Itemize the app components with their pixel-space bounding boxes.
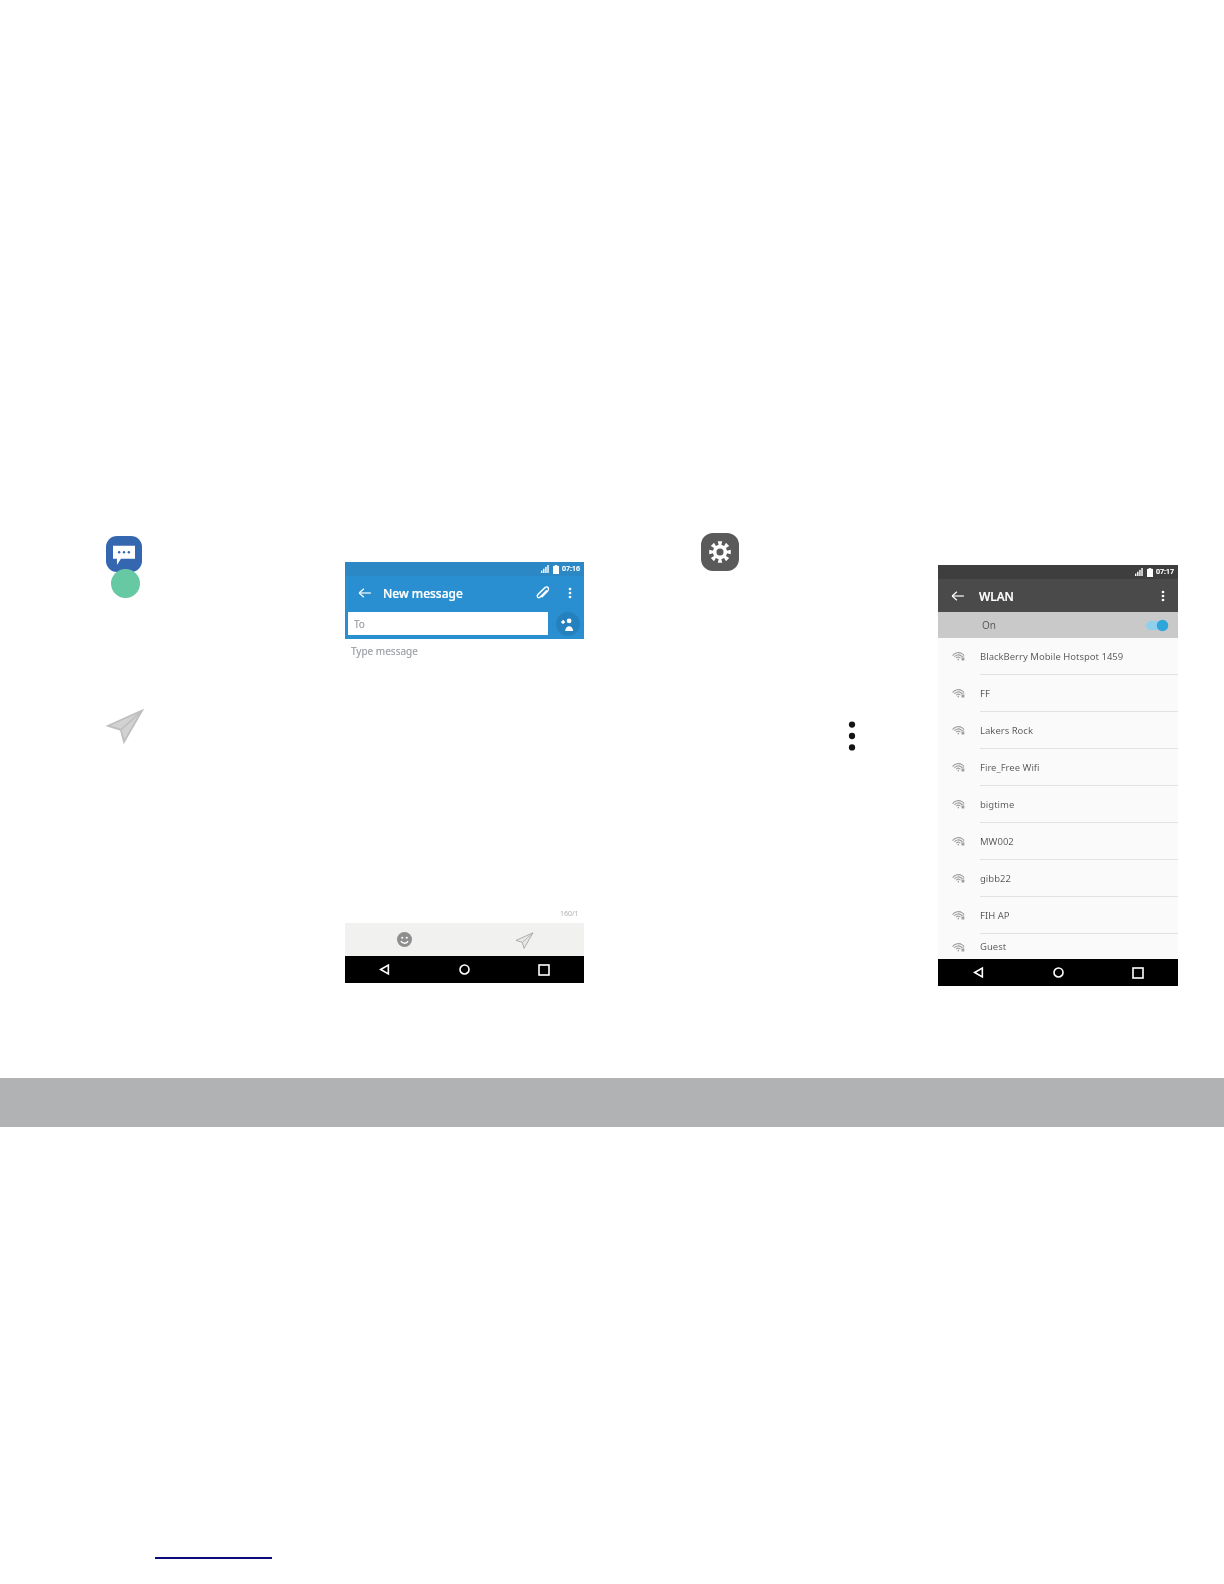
button[interactable]: Recents [504, 956, 584, 983]
staticText: To [354, 617, 365, 631]
button[interactable]: Contact [111, 569, 140, 598]
button[interactable]: Home [424, 956, 504, 983]
button[interactable]: bigtime [938, 786, 1178, 822]
button[interactable]: To [348, 612, 548, 635]
staticText: Lakers Rock [980, 724, 1170, 737]
button[interactable]: Settings [701, 533, 739, 571]
button[interactable]: Back [938, 579, 1178, 612]
staticText: Fire_Free Wifi [980, 761, 1170, 774]
button[interactable]: gibb22 [938, 860, 1178, 896]
staticText: Guest [980, 940, 1170, 953]
staticText: New message [383, 585, 463, 601]
button[interactable]: MW002 [938, 823, 1178, 859]
button[interactable]: Attach [533, 583, 553, 603]
button[interactable]: Home [1018, 959, 1098, 986]
staticText: MW002 [980, 835, 1170, 848]
staticText: 07:17 [1156, 567, 1174, 577]
button[interactable]: FIH AP [938, 897, 1178, 933]
staticText: FF [980, 687, 1170, 700]
button[interactable]: Back [345, 956, 424, 983]
staticText: BlackBerry Mobile Hotspot 1459 [980, 650, 1170, 663]
staticText: 160/1 [560, 909, 579, 919]
button[interactable]: Send [464, 923, 584, 956]
button[interactable]: Lakers Rock [938, 712, 1178, 748]
staticText: FIH AP [980, 909, 1170, 922]
button[interactable]: Back [355, 583, 375, 603]
button[interactable]: More options [562, 585, 578, 601]
staticText: WLAN [979, 588, 1014, 604]
button[interactable]: Emoji [345, 923, 464, 956]
staticText: On [982, 618, 996, 632]
button[interactable]: Guest [938, 934, 1178, 959]
staticText: bigtime [980, 798, 1170, 811]
button[interactable]: Send [104, 705, 144, 745]
button[interactable]: On [938, 612, 1178, 638]
button[interactable]: More options [843, 717, 861, 755]
button[interactable]: FF [938, 675, 1178, 711]
button[interactable]: More options [1155, 588, 1171, 604]
button[interactable]: Back [938, 959, 1018, 986]
staticText: 07:16 [562, 564, 580, 574]
button[interactable]: Back [948, 586, 968, 606]
button[interactable]: Add recipient [556, 612, 580, 636]
button[interactable]: Back [345, 576, 584, 609]
staticText: gibb22 [980, 872, 1170, 885]
button[interactable]: Messaging [106, 536, 142, 572]
button[interactable]: Type message [345, 639, 584, 923]
staticText: Type message [351, 644, 418, 658]
button[interactable]: Recents [1098, 959, 1178, 986]
button[interactable]: Fire_Free Wifi [938, 749, 1178, 785]
button[interactable]: BlackBerry Mobile Hotspot 1459 [938, 638, 1178, 674]
